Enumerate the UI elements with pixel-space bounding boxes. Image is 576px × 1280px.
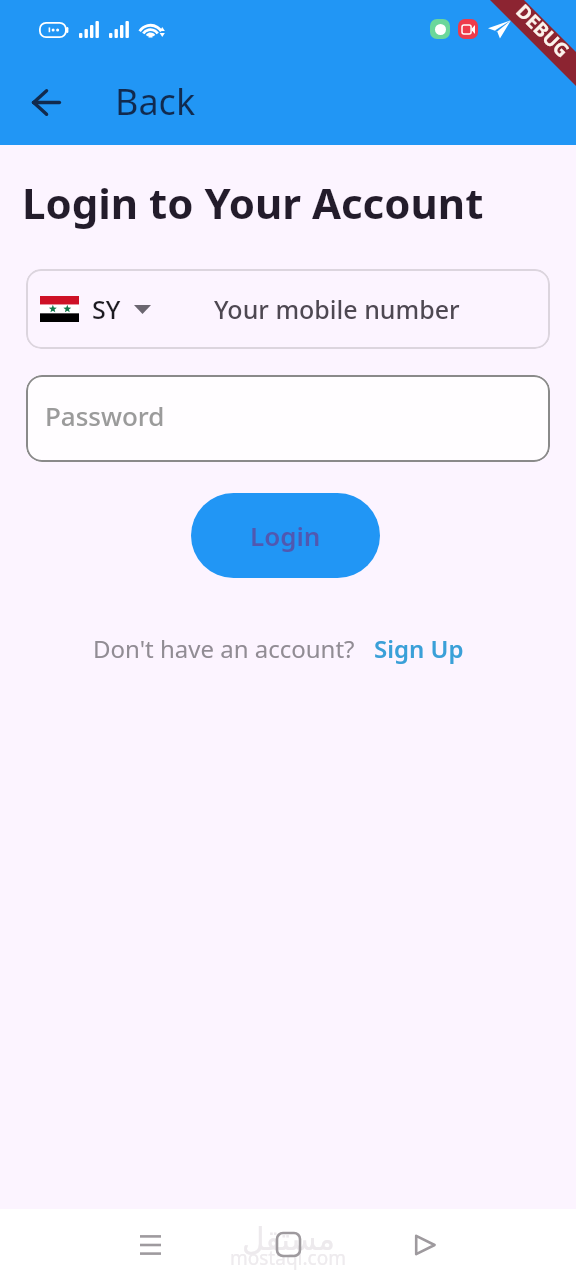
button[interactable]: Back: [385, 1209, 465, 1280]
button[interactable]: Back: [18, 74, 74, 130]
staticText: Login to Your Account: [22, 174, 484, 231]
staticText: Don't have an account?: [93, 632, 355, 665]
staticText: Your mobile number: [214, 292, 460, 326]
button[interactable]: Sign Up: [372, 628, 466, 669]
staticText: SY: [92, 292, 121, 326]
staticText: DEBUG: [510, 0, 576, 64]
button[interactable]: SY: [26, 269, 550, 349]
staticText: Password: [45, 398, 165, 433]
button[interactable]: Recent apps: [110, 1209, 190, 1280]
staticText: mostaql.com: [230, 1245, 346, 1271]
button[interactable]: Password: [26, 375, 550, 462]
staticText: مستقل: [242, 1221, 335, 1257]
button[interactable]: Home: [248, 1209, 328, 1280]
staticText: Back: [115, 77, 196, 126]
staticText: Login: [250, 518, 321, 553]
staticText: Sign Up: [374, 632, 464, 665]
button[interactable]: Login: [191, 493, 380, 578]
